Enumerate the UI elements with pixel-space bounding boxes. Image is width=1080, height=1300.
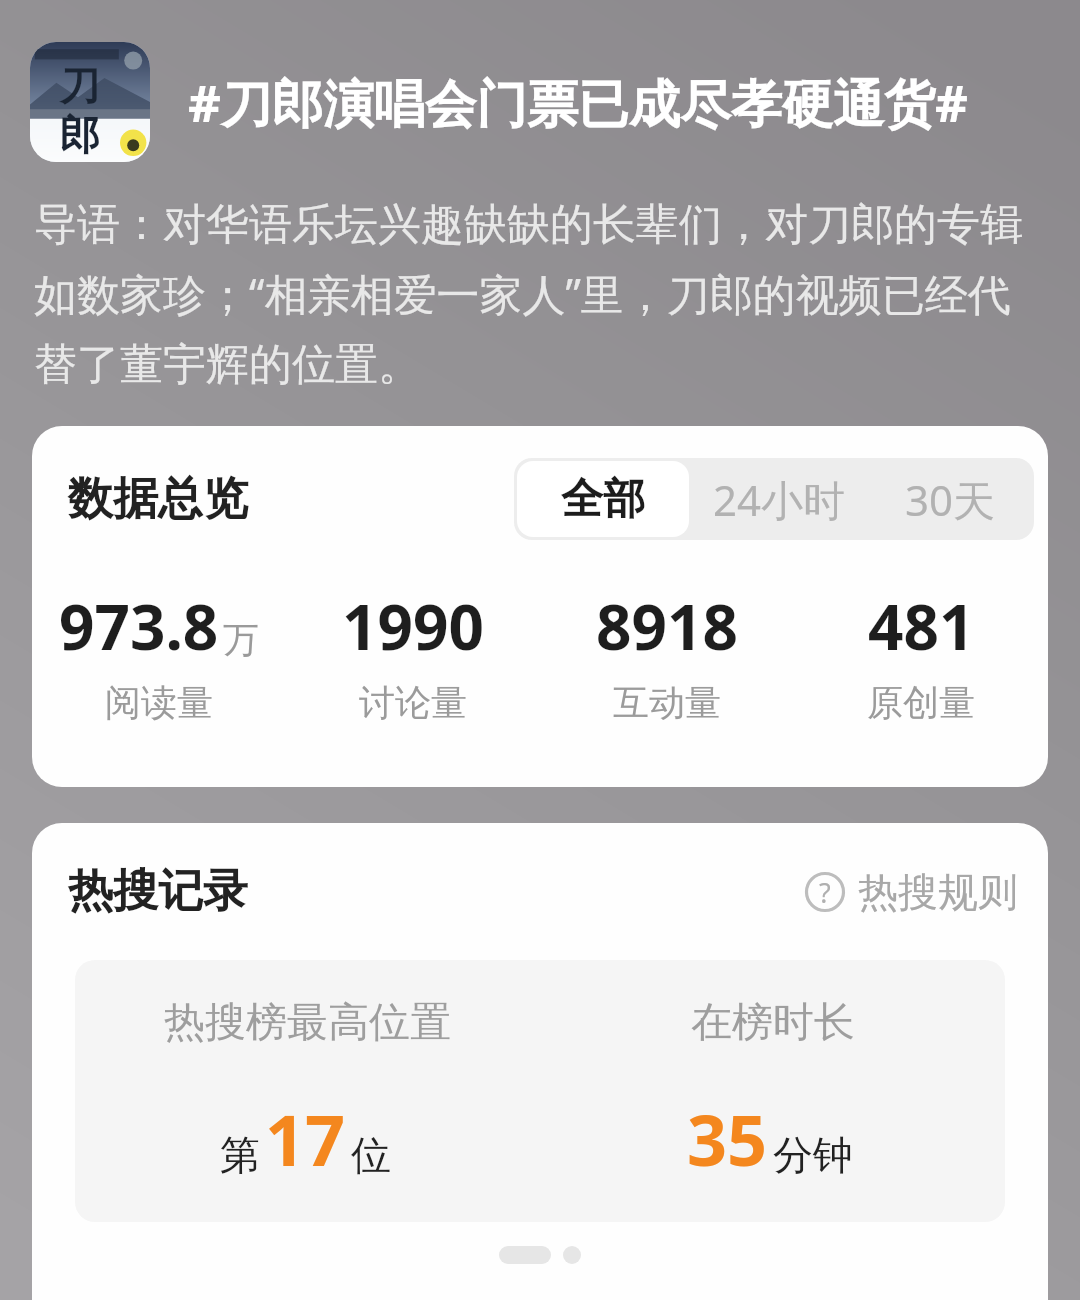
staticText: 万 xyxy=(223,617,259,662)
staticText: 481 xyxy=(868,584,975,668)
staticText: 分钟 xyxy=(773,1130,853,1180)
button[interactable]: 热搜榜最高位置 xyxy=(75,960,540,1222)
other: 热搜规则说明 xyxy=(805,872,845,912)
staticText: 刀 xyxy=(60,60,100,110)
staticText: 第 xyxy=(220,1130,260,1180)
button[interactable]: 8918 xyxy=(540,584,794,725)
staticText: 8918 xyxy=(596,584,738,668)
button[interactable]: 在榜时长 xyxy=(540,960,1005,1222)
button[interactable]: 全部 xyxy=(517,461,689,537)
staticText: 互动量 xyxy=(613,680,721,725)
staticText: 1990 xyxy=(342,584,484,668)
staticText: 30天 xyxy=(905,471,996,528)
staticText: 17 xyxy=(265,1091,346,1186)
staticText: 973.8 xyxy=(59,584,219,668)
staticText: 导语：对华语乐坛兴趣缺缺的长辈们，对刀郎的专辑如数家珍；“相亲相爱一家人”里，刀… xyxy=(34,198,1050,392)
staticText: 位 xyxy=(351,1130,391,1180)
button[interactable]: 1990 xyxy=(286,584,540,725)
staticText: 热搜记录 xyxy=(68,863,248,920)
staticText: 全部 xyxy=(561,473,645,526)
button[interactable]: 专辑封面 xyxy=(30,42,1056,162)
button[interactable]: 24小时 xyxy=(692,458,866,540)
staticText: 热搜榜最高位置 xyxy=(164,997,451,1049)
staticText: 阅读量 xyxy=(105,680,213,725)
button[interactable]: 481 xyxy=(794,584,1048,725)
button[interactable]: 专辑封面 xyxy=(30,42,150,162)
staticText: 24小时 xyxy=(713,471,846,528)
staticText: 35 xyxy=(687,1091,768,1186)
button[interactable]: 973.8 xyxy=(32,584,286,725)
staticText: 在榜时长 xyxy=(691,997,855,1049)
staticText: 数据总览 xyxy=(68,471,248,528)
button[interactable]: 热搜规则说明 xyxy=(805,867,1018,917)
staticText: 原创量 xyxy=(867,680,975,725)
staticText: 讨论量 xyxy=(359,680,467,725)
staticText: ? xyxy=(819,874,831,911)
staticText: 热搜规则 xyxy=(858,867,1018,917)
button[interactable]: 30天 xyxy=(866,458,1034,540)
staticText: 郎 xyxy=(60,110,100,160)
staticText: #刀郎演唱会门票已成尽孝硬通货# xyxy=(188,67,968,137)
